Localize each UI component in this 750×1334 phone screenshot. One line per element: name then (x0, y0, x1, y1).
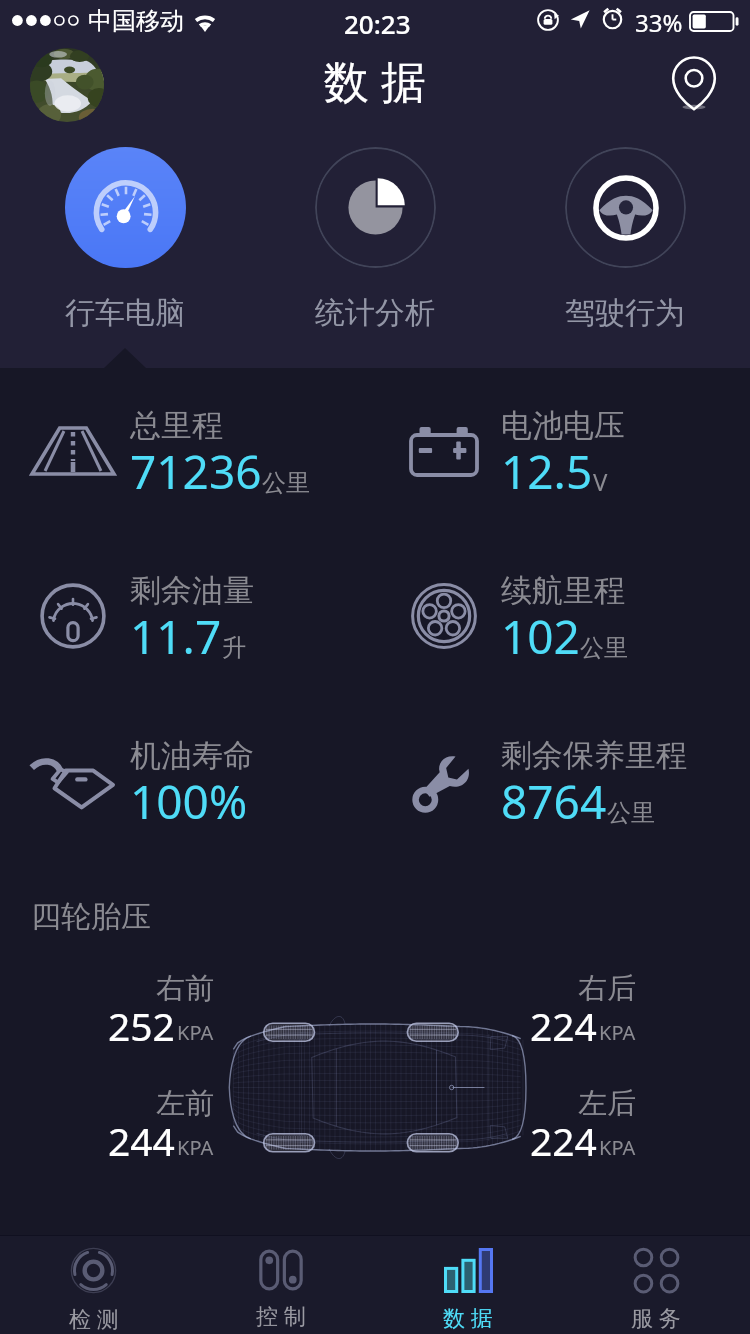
button[interactable]: 统计分析 (250, 130, 500, 332)
button[interactable]: Location (663, 54, 725, 116)
staticText: 中国移动 (88, 6, 184, 36)
staticText: 左后 (578, 1085, 636, 1122)
staticText: 电池电压 (501, 406, 625, 445)
staticText: 右后 (578, 970, 636, 1007)
staticText: 11.7 (130, 605, 222, 668)
staticText: KPA (177, 1019, 214, 1046)
staticText: 100% (130, 770, 248, 833)
button[interactable]: 控 制 (187, 1240, 374, 1330)
staticText: 数 据 (443, 1302, 493, 1332)
staticText: 机油寿命 (130, 736, 254, 775)
staticText: 252 (108, 999, 175, 1052)
staticText: 33% (635, 6, 683, 39)
staticText: 公里 (607, 798, 655, 828)
staticText: 服 务 (631, 1302, 681, 1332)
staticText: 检 测 (69, 1303, 119, 1333)
staticText: 总里程 (130, 406, 223, 445)
button[interactable]: 服 务 (562, 1239, 750, 1332)
staticText: 102 (501, 605, 580, 668)
staticText: 统计分析 (315, 294, 435, 332)
staticText: 224 (530, 999, 597, 1052)
staticText: KPA (177, 1134, 214, 1161)
staticText: 控 制 (256, 1300, 306, 1330)
button[interactable]: 行车电脑 (0, 130, 250, 332)
staticText: 续航里程 (501, 571, 625, 610)
staticText: 71236 (130, 440, 262, 503)
button[interactable]: 检 测 (0, 1238, 187, 1333)
button[interactable]: 总里程 (0, 368, 375, 533)
staticText: 20:23 (344, 6, 411, 41)
button[interactable]: 续航里程 (375, 533, 750, 698)
staticText: 数 据 (324, 50, 426, 111)
staticText: 公里 (580, 633, 628, 663)
button[interactable]: 机油寿命 (0, 698, 375, 863)
button[interactable]: 电池电压 (375, 368, 750, 533)
button[interactable]: Profile (30, 48, 104, 122)
staticText: KPA (599, 1019, 636, 1046)
staticText: 行车电脑 (65, 294, 185, 332)
staticText: V (593, 465, 608, 498)
staticText: 剩余保养里程 (501, 736, 687, 775)
staticText: 公里 (262, 468, 310, 498)
button[interactable]: 驾驶行为 (500, 130, 750, 332)
staticText: 驾驶行为 (565, 294, 685, 332)
button[interactable]: 剩余油量 (0, 533, 375, 698)
button[interactable]: 剩余保养里程 (375, 698, 750, 863)
staticText: KPA (599, 1134, 636, 1161)
staticText: 244 (108, 1114, 175, 1167)
staticText: 剩余油量 (130, 571, 254, 610)
staticText: 升 (222, 633, 246, 663)
button[interactable]: 数 据 (374, 1239, 562, 1332)
staticText: 右前 (156, 970, 214, 1007)
staticText: 12.5 (501, 440, 593, 503)
staticText: 左前 (156, 1085, 214, 1122)
staticText: 四轮胎压 (31, 898, 151, 936)
staticText: 224 (530, 1114, 597, 1167)
staticText: 8764 (501, 770, 607, 833)
